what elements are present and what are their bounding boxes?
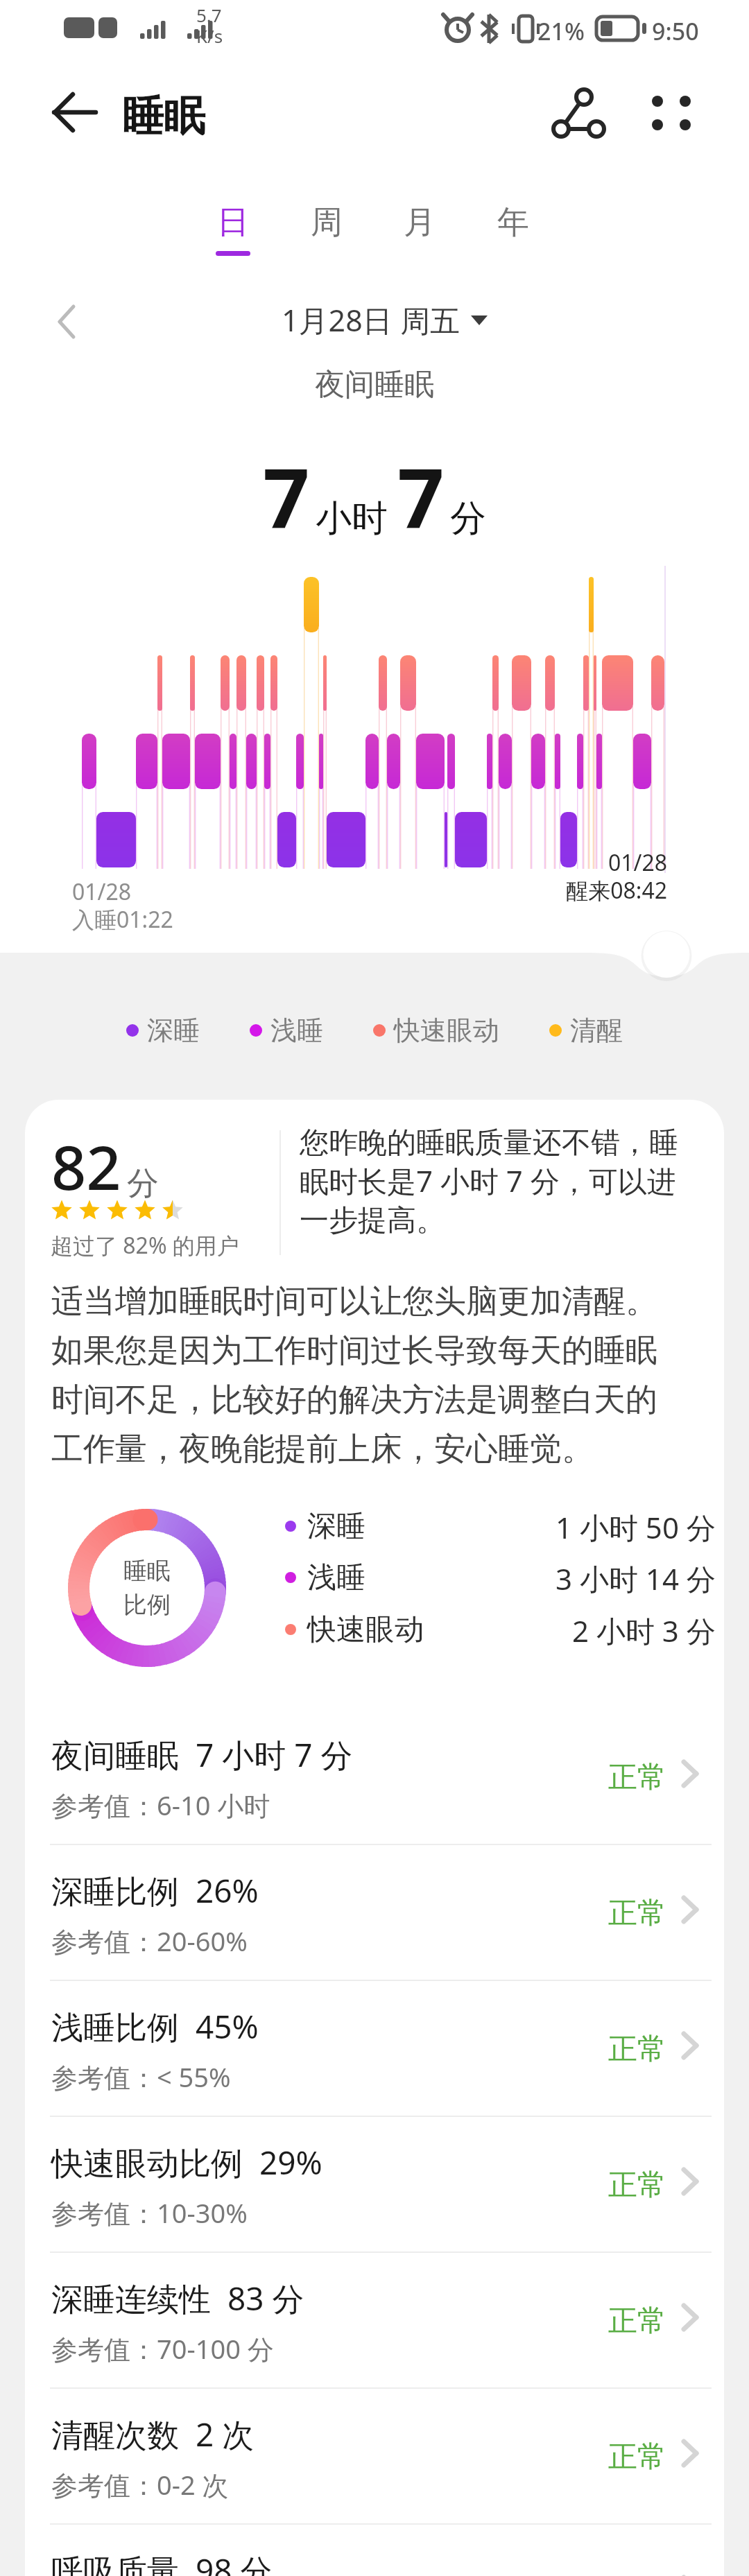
staticText: 参考值：6-10 小时 <box>51 1787 270 1823</box>
staticText: 正常 <box>608 1895 666 1932</box>
staticText: 年 <box>497 202 529 243</box>
button[interactable]: 月 <box>381 202 458 272</box>
staticText: 01/28 入睡01:22 <box>72 876 173 935</box>
button[interactable]: 呼吸质量 98 分 <box>25 2525 724 2576</box>
button[interactable]: More options <box>638 82 702 146</box>
button[interactable]: 浅睡 <box>250 1014 323 1047</box>
staticText: 参考值：70-100 分 <box>51 2331 274 2367</box>
button[interactable]: 快速眼动 <box>373 1014 499 1047</box>
staticText: 快速眼动 <box>394 1014 499 1047</box>
staticText: 快速眼动 <box>307 1611 424 1648</box>
staticText: 分 <box>127 1164 159 1204</box>
staticText: 深睡连续性 83 分 <box>51 2276 304 2320</box>
button[interactable]: 浅睡比例 45% <box>25 1981 724 2116</box>
staticText: 浅睡 <box>307 1559 365 1596</box>
staticText: 正常 <box>608 2303 666 2340</box>
staticText: 参考值：10-30% <box>51 2195 248 2231</box>
staticText: 21% <box>537 15 585 47</box>
staticText: 正常 <box>608 2167 666 2204</box>
staticText: 清醒次数 2 次 <box>51 2412 255 2456</box>
staticText: 深睡 <box>307 1508 365 1545</box>
staticText: 夜间睡眠 7 小时 7 分 <box>51 1733 353 1777</box>
staticText: 清醒 <box>570 1014 623 1047</box>
staticText: 正常 <box>608 2439 666 2475</box>
staticText: 适当增加睡眠时间可以让您头脑更加清醒。如果您是因为工作时间过长导致每天的睡眠时间… <box>51 1281 669 1469</box>
button[interactable]: 夜间睡眠 7 小时 7 分 <box>25 1709 724 1844</box>
staticText: 1月28日 周五 <box>282 300 460 340</box>
staticText: 分 <box>450 496 486 542</box>
staticText: 参考值：20-60% <box>51 1923 248 1959</box>
button[interactable]: 快速眼动比例 29% <box>25 2117 724 2251</box>
staticText: 5.7 K/s <box>196 3 223 48</box>
staticText: 深睡比例 26% <box>51 1869 259 1912</box>
staticText: 7 <box>397 441 445 553</box>
button[interactable]: 深睡连续性 83 分 <box>25 2253 724 2387</box>
button[interactable]: 清醒 <box>549 1014 623 1047</box>
button[interactable]: 年 <box>475 202 551 272</box>
staticText: 7 <box>263 441 310 553</box>
staticText: 2 小时 3 分 <box>572 1611 716 1648</box>
staticText: 3 小时 14 分 <box>556 1559 716 1596</box>
staticText: 参考值：< 55% <box>51 2059 231 2095</box>
staticText: 9:50 <box>652 15 699 47</box>
button[interactable]: 深睡比例 26% <box>25 1845 724 1980</box>
staticText: 浅睡比例 45% <box>51 2005 259 2048</box>
staticText: 正常 <box>608 2031 666 2068</box>
button[interactable]: Previous day <box>43 297 93 347</box>
staticText: 小时 <box>316 496 388 542</box>
staticText: 正常 <box>608 1759 666 1796</box>
staticText: 快速眼动比例 29% <box>51 2141 322 2184</box>
staticText: 周 <box>311 202 343 243</box>
staticText: 日 <box>217 202 249 243</box>
staticText: 月 <box>404 202 436 243</box>
button[interactable]: 深睡 <box>126 1014 200 1047</box>
button[interactable]: 清醒次数 2 次 <box>25 2389 724 2523</box>
button[interactable]: 日 <box>195 202 271 272</box>
button[interactable]: 1月28日 周五 <box>282 300 488 340</box>
staticText: 浅睡 <box>270 1014 323 1047</box>
button[interactable]: 周 <box>289 202 365 272</box>
staticText: 参考值：0-2 次 <box>51 2466 229 2502</box>
staticText: 呼吸质量 98 分 <box>51 2548 273 2576</box>
staticText: 1 小时 50 分 <box>556 1507 716 1545</box>
staticText: 超过了 82% 的用户 <box>51 1230 239 1261</box>
staticText: 82 <box>51 1125 121 1208</box>
staticText: 夜间睡眠 <box>315 366 434 404</box>
staticText: 睡眠 比例 <box>123 1556 171 1620</box>
staticText: 深睡 <box>147 1014 200 1047</box>
button[interactable]: Back <box>42 80 108 147</box>
staticText: 01/28 醒来08:42 <box>520 847 667 906</box>
staticText: 睡眠 <box>122 90 205 143</box>
staticText: 您昨晚的睡眠质量还不错，睡眠时长是7 小时 7 分，可以进一步提高。 <box>300 1125 695 1239</box>
button[interactable]: Share <box>544 82 608 146</box>
